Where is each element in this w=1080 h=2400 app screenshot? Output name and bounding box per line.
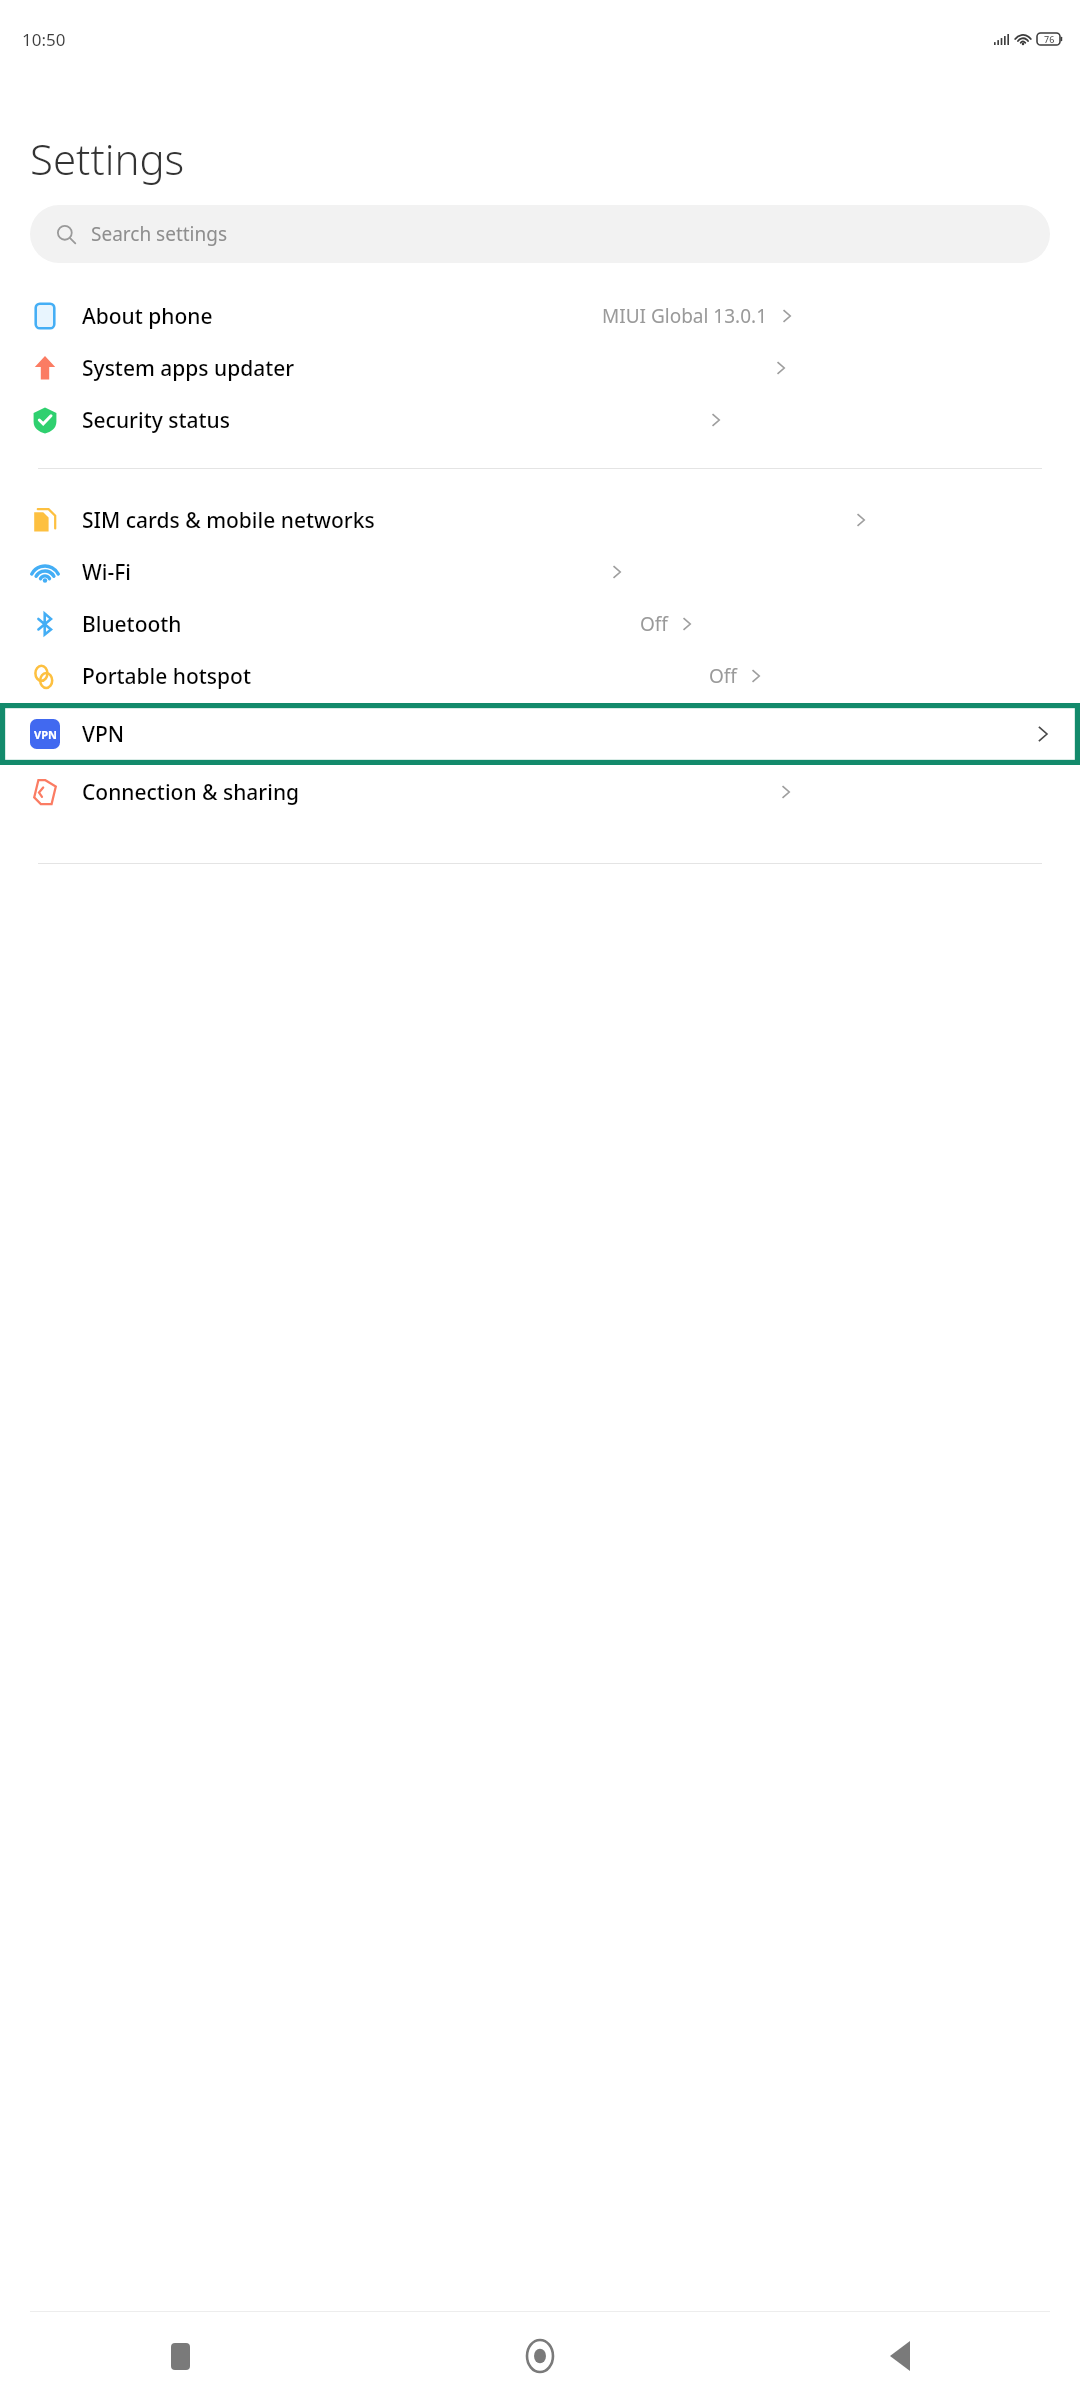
button[interactable]: Home	[360, 2312, 720, 2400]
staticText: VPN	[34, 727, 57, 742]
button[interactable]: Security status	[0, 394, 1080, 446]
button[interactable]: System apps updater	[0, 342, 1080, 394]
staticText: 76	[1044, 33, 1055, 45]
staticText: Security status	[82, 406, 230, 435]
button[interactable]: SIM cards & mobile networks	[0, 494, 1080, 546]
button[interactable]: Wi-Fi	[0, 546, 1080, 598]
staticText: MIUI Global 13.0.1	[602, 303, 768, 329]
staticText: Off	[640, 611, 668, 637]
staticText: Search settings	[91, 221, 228, 247]
button[interactable]: Portable hotspot	[0, 650, 1080, 702]
staticText: Bluetooth	[82, 610, 182, 639]
button[interactable]: About phone	[0, 290, 1080, 342]
button[interactable]: VPN	[7, 703, 1073, 765]
staticText: Wi-Fi	[82, 558, 131, 587]
staticText: Connection & sharing	[82, 778, 300, 807]
button[interactable]: Search settings	[30, 205, 1050, 263]
button[interactable]: Recent apps	[0, 2312, 360, 2400]
staticText: Off	[709, 663, 737, 689]
staticText: Portable hotspot	[82, 662, 251, 691]
button[interactable]: Back	[720, 2312, 1080, 2400]
staticText: SIM cards & mobile networks	[82, 506, 375, 535]
staticText: About phone	[82, 302, 213, 331]
staticText: System apps updater	[82, 354, 295, 383]
button[interactable]: Bluetooth	[0, 598, 1080, 650]
button[interactable]: Connection & sharing	[0, 766, 1080, 818]
staticText: Settings	[30, 130, 185, 187]
staticText: 10:50	[22, 28, 66, 51]
staticText: VPN	[82, 720, 125, 749]
